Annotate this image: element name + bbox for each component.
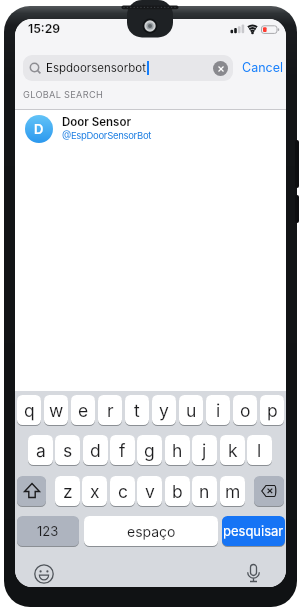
staticText: j	[202, 440, 207, 461]
button[interactable]: o	[233, 395, 257, 425]
staticText: b	[172, 481, 183, 502]
button[interactable]: x	[82, 476, 107, 506]
button[interactable]	[213, 61, 228, 76]
staticText: s	[63, 440, 73, 461]
button[interactable]: t	[125, 395, 149, 425]
button[interactable]: c	[110, 476, 135, 506]
button[interactable]: g	[137, 435, 162, 465]
button[interactable]: m	[220, 476, 245, 506]
button[interactable]: w	[44, 395, 68, 425]
staticText: e	[78, 400, 89, 421]
button[interactable]: 123	[17, 516, 79, 546]
staticText: @EspDoorSensorBot	[62, 130, 152, 141]
button[interactable]: b	[165, 476, 190, 506]
staticText: u	[186, 400, 197, 421]
button[interactable]	[32, 562, 56, 586]
button[interactable]: v	[137, 476, 162, 506]
staticText: p	[267, 400, 278, 421]
staticText: n	[199, 481, 210, 502]
staticText: l	[257, 440, 262, 461]
staticText: y	[159, 400, 169, 421]
button[interactable]: espaço	[84, 516, 218, 546]
button[interactable]: r	[98, 395, 122, 425]
staticText: c	[118, 481, 128, 502]
staticText: pesquisar	[223, 523, 284, 539]
button[interactable]: e	[71, 395, 95, 425]
button[interactable]: l	[247, 435, 272, 465]
button[interactable]: pesquisar	[222, 516, 285, 546]
button[interactable]: p	[260, 395, 284, 425]
button[interactable]: Espdoorsensorbot	[23, 55, 233, 81]
staticText: t	[134, 400, 140, 421]
button[interactable]: a	[28, 435, 53, 465]
staticText: k	[228, 440, 238, 461]
staticText: 15:29	[28, 21, 61, 36]
staticText: Door Sensor	[62, 115, 131, 129]
button[interactable]	[17, 476, 46, 506]
staticText: a	[36, 440, 46, 461]
button[interactable]: i	[206, 395, 230, 425]
staticText: r	[107, 400, 114, 421]
button[interactable]	[254, 476, 284, 506]
button[interactable]: n	[192, 476, 217, 506]
staticText: f	[119, 440, 126, 461]
button[interactable]: q	[17, 395, 41, 425]
staticText: w	[49, 400, 64, 421]
staticText: z	[63, 481, 73, 502]
button[interactable]: Cancel	[242, 60, 283, 75]
staticText: i	[216, 400, 221, 421]
button[interactable]: h	[165, 435, 190, 465]
staticText: 123	[37, 523, 59, 539]
button[interactable]: y	[152, 395, 176, 425]
staticText: Espdoorsensorbot	[46, 61, 146, 75]
staticText: d	[90, 440, 101, 461]
staticText: q	[24, 400, 35, 421]
button[interactable]: j	[192, 435, 217, 465]
button[interactable]	[241, 558, 266, 584]
staticText: o	[240, 400, 251, 421]
button[interactable]: k	[220, 435, 245, 465]
button[interactable]: s	[55, 435, 80, 465]
staticText: espaço	[127, 523, 176, 540]
staticText: v	[145, 481, 155, 502]
staticText: D	[34, 121, 44, 137]
staticText: m	[225, 481, 241, 502]
staticText: Cancel	[242, 60, 283, 75]
button[interactable]: d	[83, 435, 108, 465]
staticText: h	[172, 440, 183, 461]
staticText: g	[144, 440, 155, 461]
button[interactable]: f	[110, 435, 135, 465]
button[interactable]: u	[179, 395, 203, 425]
button[interactable]: z	[55, 476, 80, 506]
staticText: GLOBAL SEARCH	[23, 89, 104, 100]
button[interactable]: D	[15, 110, 286, 156]
staticText: x	[90, 481, 100, 502]
